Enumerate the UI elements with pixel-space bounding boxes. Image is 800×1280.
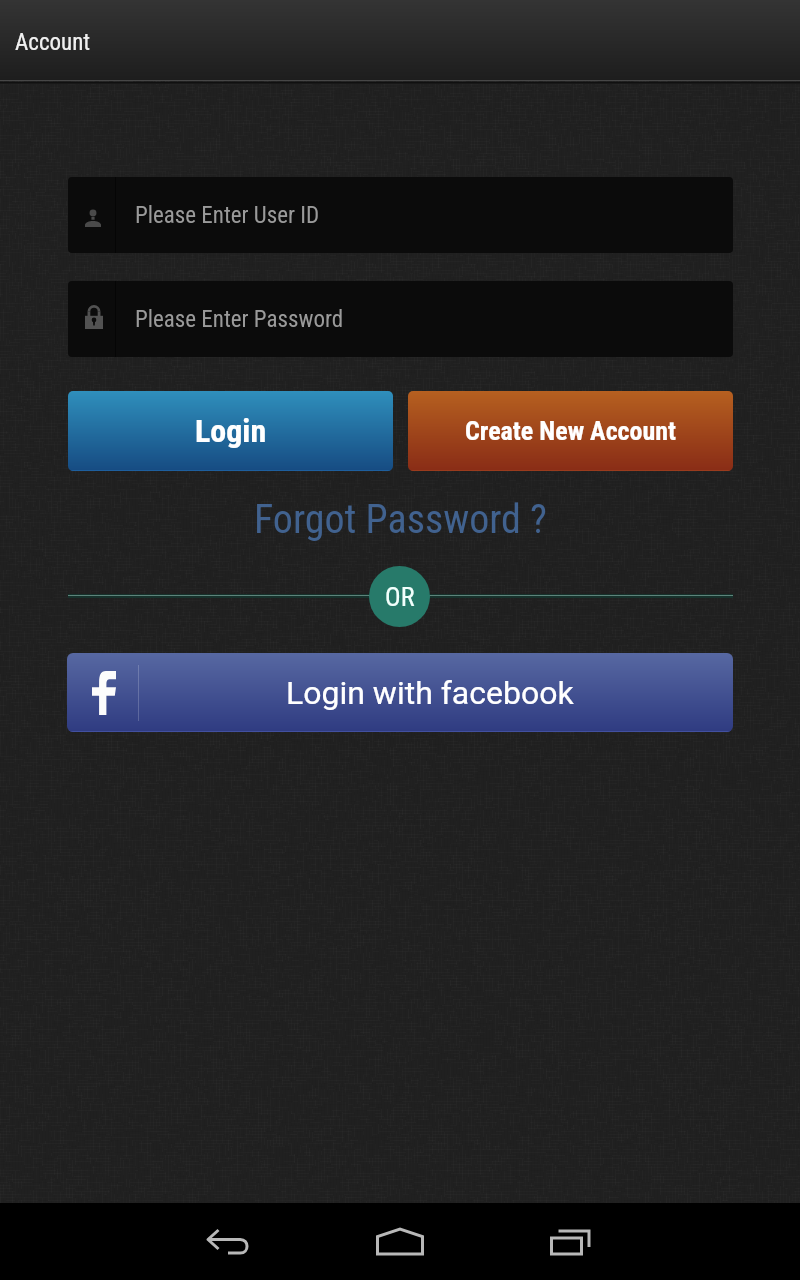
button[interactable]: Login with facebook	[67, 653, 733, 732]
button[interactable]: Please Enter User ID	[68, 177, 733, 253]
staticText: Account	[15, 29, 91, 56]
button[interactable]: Home	[312, 1203, 488, 1280]
button[interactable]: Recent apps	[485, 1203, 659, 1280]
staticText: Forgot Password ?	[254, 496, 547, 543]
button[interactable]: Back	[142, 1203, 316, 1280]
staticText: Login	[195, 412, 267, 450]
button[interactable]: Create New Account	[408, 391, 733, 471]
staticText: Create New Account	[465, 416, 677, 446]
staticText: Please Enter Password	[135, 306, 344, 333]
staticText: Please Enter User ID	[135, 202, 320, 229]
button[interactable]: Login	[68, 391, 393, 471]
staticText: OR	[385, 582, 415, 612]
button[interactable]: Forgot Password ?	[250, 495, 550, 543]
button[interactable]: Please Enter Password	[68, 281, 733, 357]
staticText: Login with facebook	[286, 674, 574, 712]
